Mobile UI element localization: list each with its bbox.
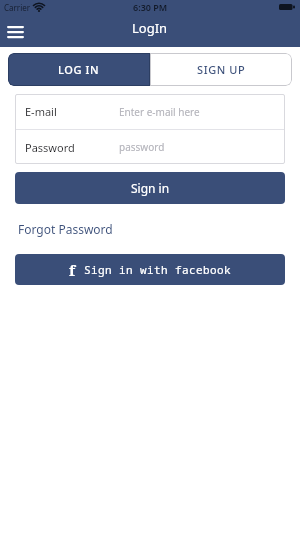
button[interactable]: E-mail [15, 94, 285, 129]
staticText: Carrier [4, 2, 31, 13]
staticText: E-mail [25, 104, 57, 119]
staticText: Sign in with facebook [84, 262, 231, 277]
button[interactable]: SIGN UP [150, 53, 292, 86]
button[interactable]: f [15, 254, 285, 285]
staticText: Enter e-mail here [119, 105, 200, 119]
staticText: Sign in [131, 180, 170, 196]
staticText: LogIn [132, 19, 168, 37]
button[interactable]: LOG IN [8, 53, 150, 86]
button[interactable]: Forgot Password [18, 221, 113, 237]
staticText: Password [25, 140, 75, 155]
button[interactable]: Password [15, 130, 285, 164]
staticText: SIGN UP [197, 62, 246, 77]
button[interactable]: Sign in [15, 172, 285, 204]
staticText: LOG IN [58, 62, 100, 77]
staticText: 6:30 PM [133, 1, 168, 13]
staticText: f [69, 260, 76, 280]
staticText: password [119, 140, 165, 154]
button[interactable] [7, 26, 24, 38]
